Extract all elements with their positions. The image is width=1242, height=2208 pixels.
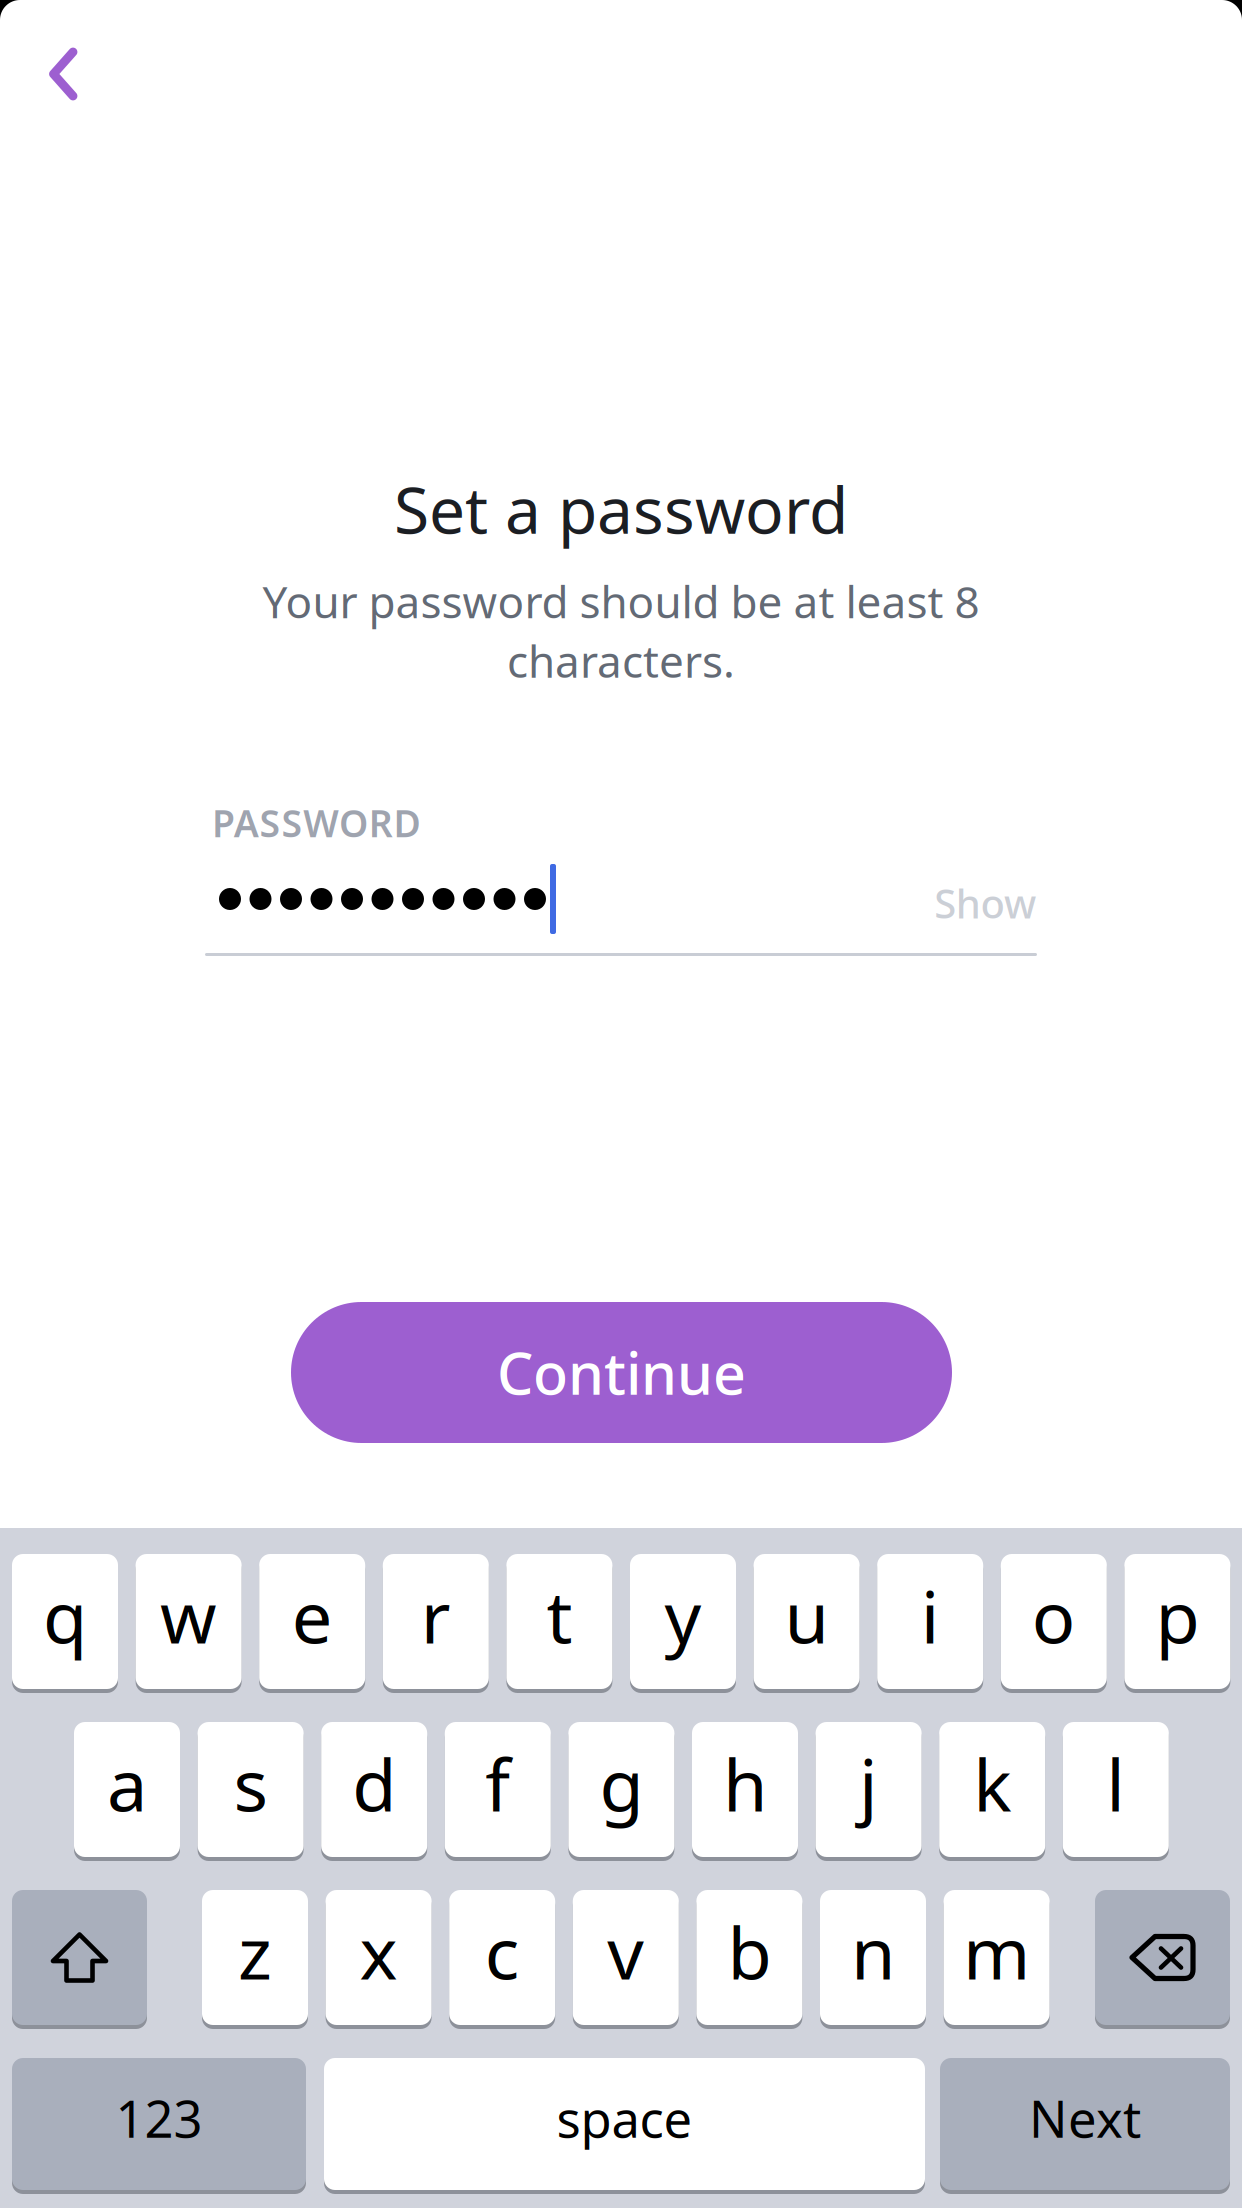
button[interactable]: g — [568, 1722, 674, 1857]
staticText: u — [785, 1568, 829, 1663]
button[interactable]: y — [630, 1554, 736, 1689]
staticText: Continue — [497, 1334, 746, 1410]
staticText: q — [43, 1568, 87, 1663]
button[interactable]: n — [820, 1890, 926, 2025]
button[interactable]: e — [259, 1554, 365, 1689]
staticText: k — [973, 1736, 1011, 1831]
button[interactable]: v — [573, 1890, 679, 2025]
staticText: s — [234, 1736, 268, 1831]
button[interactable]: h — [692, 1722, 798, 1857]
button[interactable]: m — [944, 1890, 1050, 2025]
staticText: h — [723, 1736, 767, 1831]
button[interactable]: k — [939, 1722, 1045, 1857]
staticText: Set a password — [394, 466, 848, 551]
button[interactable]: d — [321, 1722, 427, 1857]
button[interactable]: 123 — [12, 2058, 306, 2190]
staticText: a — [107, 1736, 147, 1831]
button[interactable]: Next — [940, 2058, 1230, 2190]
button[interactable]: Shift — [12, 1890, 147, 2025]
staticText: f — [485, 1736, 510, 1831]
staticText: Show — [934, 876, 1036, 929]
button[interactable]: z — [202, 1890, 308, 2025]
staticText: x — [360, 1904, 398, 1999]
button[interactable]: r — [383, 1554, 489, 1689]
staticText: space — [556, 2084, 692, 2152]
button[interactable]: space — [324, 2058, 925, 2190]
button[interactable]: t — [506, 1554, 612, 1689]
button[interactable]: q — [12, 1554, 118, 1689]
staticText: w — [160, 1568, 217, 1663]
button[interactable]: Back — [15, 26, 111, 122]
staticText: b — [727, 1904, 771, 1999]
button[interactable]: s — [198, 1722, 304, 1857]
staticText: Next — [1029, 2084, 1141, 2152]
staticText: c — [485, 1904, 520, 1999]
staticText: l — [1106, 1736, 1125, 1831]
button[interactable]: u — [754, 1554, 860, 1689]
staticText: v — [607, 1904, 644, 1999]
staticText: t — [546, 1568, 572, 1663]
staticText: e — [292, 1568, 333, 1663]
staticText: z — [238, 1904, 272, 1999]
staticText: d — [352, 1736, 396, 1831]
button[interactable]: j — [816, 1722, 922, 1857]
button[interactable]: p — [1124, 1554, 1230, 1689]
button[interactable]: c — [449, 1890, 555, 2025]
staticText: PASSWORD — [212, 798, 421, 848]
button[interactable]: a — [74, 1722, 180, 1857]
staticText: r — [421, 1568, 451, 1663]
button[interactable]: f — [445, 1722, 551, 1857]
staticText: n — [851, 1904, 895, 1999]
button[interactable]: Continue — [291, 1302, 952, 1443]
staticText: 123 — [115, 2084, 202, 2152]
button[interactable]: w — [136, 1554, 242, 1689]
button[interactable]: i — [877, 1554, 983, 1689]
staticText: o — [1032, 1568, 1076, 1663]
staticText: g — [599, 1736, 643, 1831]
staticText: i — [921, 1568, 940, 1663]
staticText: m — [963, 1904, 1030, 1999]
button[interactable]: Delete — [1095, 1890, 1230, 2025]
staticText: y — [664, 1568, 701, 1663]
button[interactable]: x — [326, 1890, 432, 2025]
staticText: p — [1155, 1568, 1199, 1663]
staticText: Your password should be at least 8 — [262, 572, 979, 630]
button[interactable]: b — [696, 1890, 802, 2025]
button[interactable]: o — [1001, 1554, 1107, 1689]
button[interactable]: Show — [876, 875, 1036, 931]
staticText: characters. — [507, 631, 735, 690]
button[interactable]: l — [1063, 1722, 1169, 1857]
staticText: j — [859, 1736, 878, 1831]
